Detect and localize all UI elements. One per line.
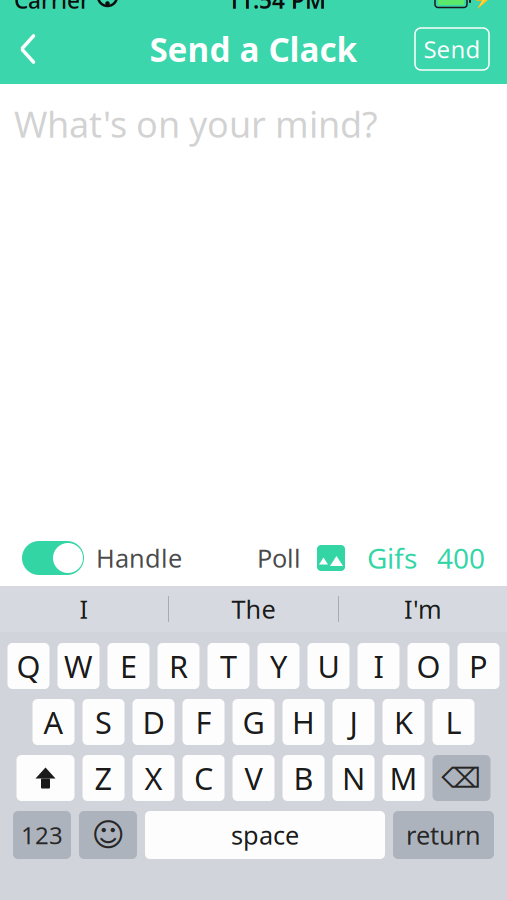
staticText: R: [169, 646, 188, 686]
staticText: W: [64, 646, 93, 686]
button[interactable]: Handle: [22, 541, 182, 575]
button[interactable]: G: [232, 699, 274, 745]
staticText: L: [445, 702, 461, 742]
staticText: Send: [423, 33, 480, 65]
button[interactable]: 123: [13, 811, 71, 859]
staticText: Poll: [257, 541, 301, 575]
staticText: ⌫: [441, 762, 481, 794]
staticText: B: [293, 758, 313, 798]
staticText: I: [79, 592, 88, 626]
button[interactable]: Delete: [432, 755, 490, 801]
staticText: T: [220, 646, 237, 686]
staticText: A: [43, 702, 63, 742]
staticText: O: [416, 646, 440, 686]
button[interactable]: Back: [0, 18, 56, 80]
button[interactable]: L: [432, 699, 474, 745]
staticText: K: [394, 702, 413, 742]
staticText: I: [373, 646, 383, 686]
staticText: J: [349, 702, 357, 742]
staticText: 11:54 PM: [227, 0, 326, 15]
button[interactable]: Poll: [257, 541, 301, 575]
button[interactable]: Z: [82, 755, 124, 801]
staticText: M: [389, 758, 417, 798]
button[interactable]: N: [332, 755, 374, 801]
button[interactable]: Send: [415, 28, 489, 70]
button[interactable]: Emoji: [79, 811, 137, 859]
staticText: D: [142, 702, 164, 742]
button[interactable]: P: [457, 643, 499, 689]
staticText: ☺: [91, 817, 124, 853]
staticText: S: [95, 702, 112, 742]
staticText: Z: [94, 758, 112, 798]
staticText: G: [242, 702, 264, 742]
staticText: Q: [16, 646, 40, 686]
staticText: H: [292, 702, 315, 742]
button[interactable]: return: [393, 811, 494, 859]
staticText: F: [195, 702, 211, 742]
staticText: space: [231, 818, 299, 852]
staticText: X: [144, 758, 162, 798]
staticText: ⚡: [473, 0, 493, 9]
button[interactable]: K: [382, 699, 424, 745]
staticText: 123: [21, 819, 63, 851]
button[interactable]: J: [332, 699, 374, 745]
button[interactable]: O: [407, 643, 449, 689]
button[interactable]: A: [32, 699, 74, 745]
staticText: P: [469, 646, 488, 686]
staticText: What's on your mind?: [14, 100, 378, 148]
staticText: Handle: [96, 541, 182, 575]
staticText: I'm: [404, 592, 442, 626]
staticText: N: [342, 758, 365, 798]
button[interactable]: T: [207, 643, 249, 689]
button[interactable]: X: [132, 755, 174, 801]
button[interactable]: Shift: [16, 755, 74, 801]
staticText: Gifs: [367, 539, 417, 577]
staticText: Carrier: [14, 0, 90, 15]
button[interactable]: V: [232, 755, 274, 801]
button[interactable]: Y: [257, 643, 299, 689]
button[interactable]: Q: [7, 643, 49, 689]
staticText: C: [194, 758, 213, 798]
button[interactable]: M: [382, 755, 424, 801]
staticText: V: [244, 758, 262, 798]
staticText: The: [231, 592, 275, 626]
button[interactable]: E: [107, 643, 149, 689]
button[interactable]: space: [145, 811, 385, 859]
button[interactable]: B: [282, 755, 324, 801]
staticText: E: [120, 646, 137, 686]
staticText: 400: [437, 539, 485, 577]
staticText: U: [317, 646, 339, 686]
staticText: return: [406, 818, 481, 852]
button[interactable]: H: [282, 699, 324, 745]
button[interactable]: W: [57, 643, 99, 689]
button[interactable]: D: [132, 699, 174, 745]
button[interactable]: R: [157, 643, 199, 689]
button[interactable]: I: [357, 643, 399, 689]
staticText: Send a Clack: [149, 27, 357, 71]
staticText: Y: [270, 646, 287, 686]
button[interactable]: Gifs: [345, 539, 417, 577]
button[interactable]: C: [182, 755, 224, 801]
button[interactable]: S: [82, 699, 124, 745]
button[interactable]: Add photo: [301, 545, 345, 571]
button[interactable]: F: [182, 699, 224, 745]
button[interactable]: U: [307, 643, 349, 689]
